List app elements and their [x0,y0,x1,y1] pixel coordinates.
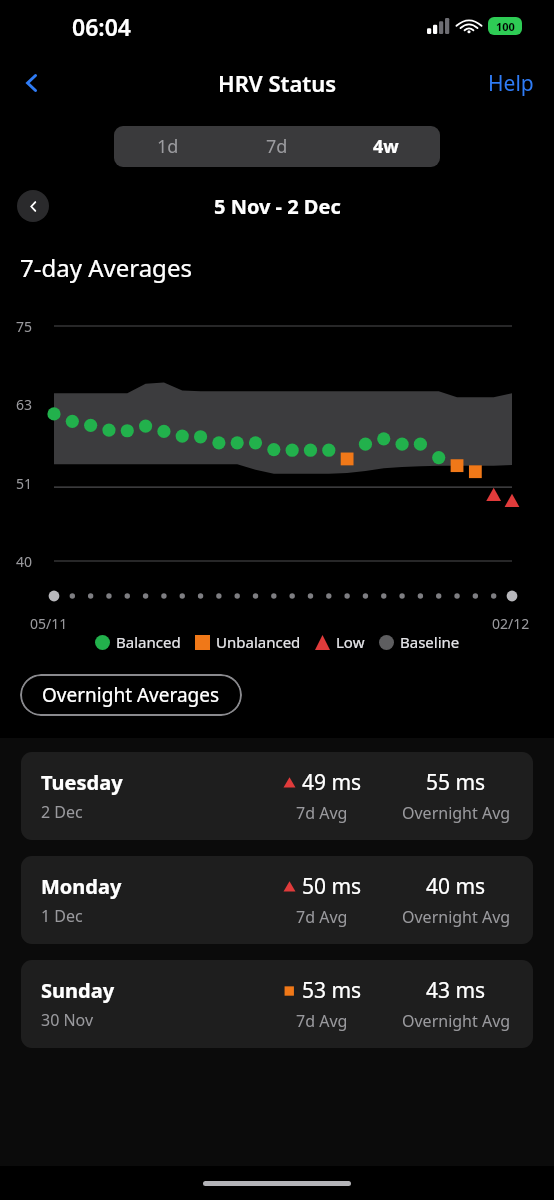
button[interactable]: Overnight Averages [20,674,242,716]
staticText: 7d Avg [296,802,348,824]
staticText: Overnight Avg [402,1010,511,1032]
button[interactable]: Tuesday [21,752,533,840]
staticText: Tuesday [41,769,123,796]
staticText: Help [488,69,534,98]
staticText: 55 ms [426,768,486,797]
staticText: 75 [16,317,33,336]
staticText: 7d Avg [296,1010,348,1032]
button[interactable]: 1d [114,126,222,167]
staticText: 43 ms [426,976,486,1005]
button[interactable]: Help [488,69,534,98]
staticText: 50 ms [302,872,362,901]
staticText: 02/12 [492,614,530,633]
staticText: 1 Dec [41,905,83,927]
staticText: 63 [16,395,33,414]
button[interactable]: 7d [222,126,331,167]
staticText: 5 Nov - 2 Dec [214,193,341,220]
staticText: 4w [373,134,399,159]
staticText: 40 [16,552,33,571]
staticText: 40 ms [426,872,486,901]
button[interactable]: Sunday [21,960,533,1048]
staticText: 7d Avg [296,906,348,928]
staticText: Monday [41,873,122,900]
button[interactable]: Previous period [17,190,49,222]
staticText: 49 ms [302,768,362,797]
staticText: Sunday [41,977,115,1004]
staticText: Baseline [400,632,460,652]
staticText: 51 [16,474,33,493]
staticText: 7-day Averages [20,251,192,284]
staticText: 7d [266,134,288,159]
staticText: Overnight Avg [402,906,511,928]
staticText: HRV Status [218,68,337,98]
staticText: 30 Nov [41,1009,94,1031]
staticText: Low [336,632,365,652]
staticText: Overnight Averages [42,682,220,708]
staticText: 06:04 [72,11,131,42]
staticText: 05/11 [30,614,68,633]
button[interactable]: 4w [331,126,440,167]
staticText: Overnight Avg [402,802,511,824]
staticText: 1d [157,134,179,159]
staticText: 100 [496,19,515,34]
staticText: Unbalanced [216,632,301,652]
button[interactable]: Monday [21,856,533,944]
staticText: Balanced [116,632,181,652]
button[interactable]: Back [10,61,54,105]
staticText: 2 Dec [41,801,83,823]
staticText: 53 ms [302,976,362,1005]
